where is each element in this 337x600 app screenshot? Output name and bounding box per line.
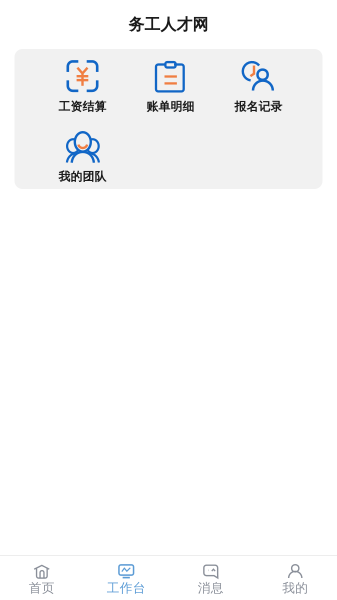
staticText: 账单明细 [146,99,194,114]
button[interactable]: 工作台 [84,555,168,600]
button[interactable]: 首页 [0,555,84,600]
staticText: 工资结算 [58,99,106,114]
staticText: 务工人才网 [128,15,208,34]
button[interactable]: 消息 [168,555,253,600]
staticText: 工作台 [107,580,146,596]
staticText: 消息 [198,580,224,596]
button[interactable]: 我的 [253,555,337,600]
button[interactable]: 工资结算 [38,61,126,112]
staticText: 我的 [282,580,308,596]
button[interactable]: 我的团队 [38,131,126,182]
staticText: 我的团队 [58,169,106,184]
staticText: 报名记录 [234,99,282,114]
staticText: 首页 [29,580,55,596]
button[interactable]: 账单明细 [126,61,214,112]
button[interactable]: 报名记录 [214,61,302,112]
